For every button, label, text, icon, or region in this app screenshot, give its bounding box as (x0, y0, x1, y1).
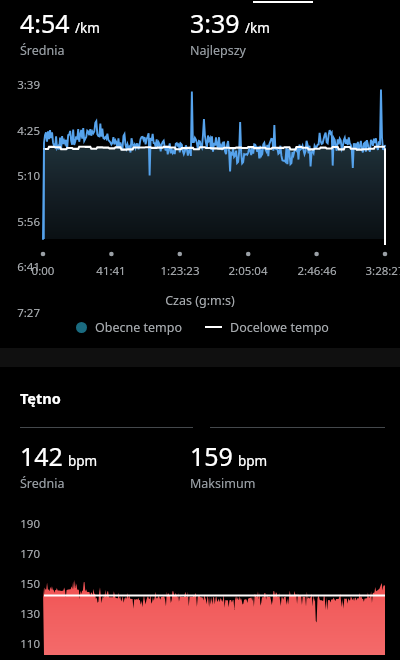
staticText: 4:25 (0, 123, 40, 139)
staticText: 190 (0, 516, 40, 532)
staticText: 41:41 (77, 263, 145, 279)
button[interactable]: 4:54 (0, 6, 190, 59)
staticText: Maksimum (190, 475, 256, 492)
staticText: bpm (68, 452, 98, 470)
staticText: 7:27 (0, 305, 40, 321)
staticText: 130 (0, 606, 40, 622)
staticText: 5:10 (0, 168, 40, 184)
staticText: 170 (0, 546, 40, 562)
staticText: 110 (0, 636, 40, 652)
staticText: 2:05:04 (214, 263, 282, 279)
button[interactable]: Docelowe tempo (205, 319, 329, 335)
staticText: Obecne tempo (95, 319, 183, 335)
staticText: Czas (g:m:s) (0, 292, 400, 309)
staticText: Średnia (20, 42, 65, 59)
staticText: 159 (190, 439, 233, 473)
staticText: 1:23:23 (146, 263, 214, 279)
staticText: /km (245, 19, 270, 37)
staticText: Tętno (20, 388, 61, 408)
staticText: 3:39 (190, 6, 240, 40)
staticText: 3:39 (0, 77, 40, 93)
staticText: 2:46:46 (283, 263, 351, 279)
button[interactable]: 159 (190, 439, 380, 492)
staticText: 142 (20, 439, 63, 473)
staticText: /km (75, 19, 100, 37)
button[interactable]: 142 (0, 439, 190, 492)
staticText: 4:54 (20, 6, 70, 40)
staticText: 0:00 (9, 263, 77, 279)
button[interactable]: Obecne tempo (76, 319, 183, 335)
staticText: Średnia (20, 475, 65, 492)
staticText: Najlepszy (190, 42, 246, 59)
button[interactable]: Wykres tempa (0, 81, 400, 244)
staticText: Docelowe tempo (230, 319, 329, 335)
button[interactable]: 3:39 (190, 6, 380, 59)
staticText: 5:56 (0, 214, 40, 230)
button[interactable]: Wykres tętna (0, 510, 400, 655)
staticText: bpm (238, 452, 268, 470)
staticText: 150 (0, 576, 40, 592)
staticText: 3:28:27 (351, 263, 400, 279)
staticText: 6:41 (0, 259, 40, 275)
